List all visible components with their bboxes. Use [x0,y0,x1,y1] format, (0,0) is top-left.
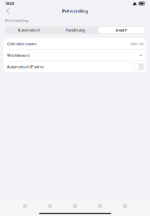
button[interactable]: BootP [98,27,144,33]
button[interactable]: Wachtwoord [3,50,146,61]
button[interactable]: App [112,201,137,210]
staticText: Wachtwoord [7,52,29,58]
staticText: BootP [116,27,127,33]
staticText: 18:02 [5,1,14,6]
staticText: Handmatig [65,27,84,33]
staticText: Automatisch [18,27,40,33]
staticText: IPv4 instelling [5,18,28,23]
staticText: IPv4 instelling [61,8,88,14]
button[interactable]: App [62,201,87,210]
button[interactable]: Back [3,7,13,15]
button[interactable]: Automatisch [6,27,52,33]
staticText: Internet [130,41,143,46]
staticText: Gebruikersnaam [7,41,37,46]
button[interactable]: App [37,201,62,210]
button[interactable]: App [87,201,112,210]
button[interactable]: Gebruikersnaam [3,38,146,49]
staticText: Automatisch IP adres [7,64,44,69]
button[interactable]: Handmatig [52,27,98,33]
button[interactable]: Automatisch IP adres [132,63,144,70]
button[interactable]: App [12,201,37,210]
